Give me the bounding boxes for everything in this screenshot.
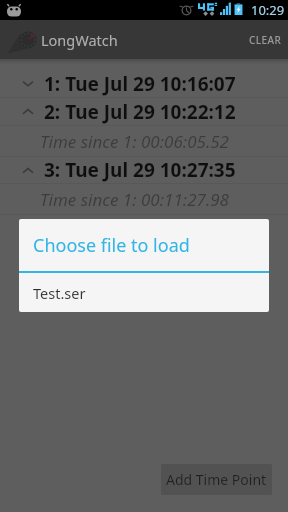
other: LongWatch xyxy=(15,28,39,52)
staticText: 1: Tue Jul 29 10:16:07 xyxy=(44,71,236,97)
staticText: Choose file to load xyxy=(33,233,190,258)
button[interactable]: Expand xyxy=(0,98,288,125)
button[interactable]: Time since 1: 00:06:05.52 xyxy=(0,126,288,156)
staticText: Time since 1: 00:11:27.98 xyxy=(40,188,229,211)
staticText: CLEAR xyxy=(249,33,282,47)
staticText: LongWatch xyxy=(41,30,118,50)
staticText: 3: Tue Jul 29 10:27:35 xyxy=(44,157,236,183)
button[interactable]: Time since 1: 00:11:27.98 xyxy=(0,184,288,214)
staticText: Time since 1: 00:06:05.52 xyxy=(40,130,229,153)
button[interactable]: Add Time Point xyxy=(161,464,272,495)
button[interactable]: Test.ser xyxy=(19,273,269,312)
staticText: Test.ser xyxy=(33,283,86,303)
other: Collapse xyxy=(22,80,34,87)
button[interactable]: CLEAR xyxy=(237,23,288,57)
staticText: 2: Tue Jul 29 10:22:12 xyxy=(44,99,236,125)
button[interactable]: Expand xyxy=(0,157,288,183)
other: Expand xyxy=(22,167,34,174)
other: Expand xyxy=(22,108,34,115)
button[interactable]: Collapse xyxy=(0,70,288,97)
staticText: Add Time Point xyxy=(166,470,267,489)
staticText: 10:29 xyxy=(251,1,285,19)
